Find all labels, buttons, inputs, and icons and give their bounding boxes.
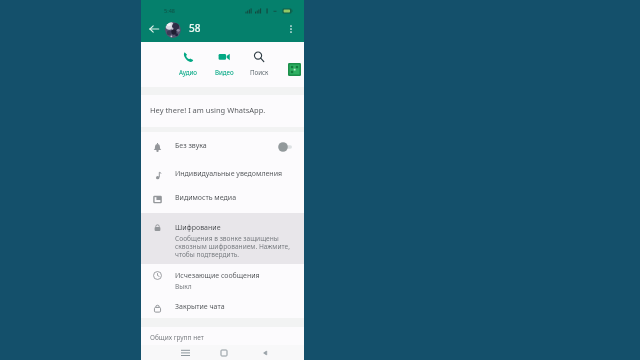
staticText: Видео bbox=[215, 68, 234, 76]
button[interactable]: QR code bbox=[288, 63, 301, 76]
staticText: Выкл bbox=[175, 282, 192, 291]
button[interactable]: Поиск bbox=[243, 46, 275, 82]
button[interactable]: Видимость медиа bbox=[141, 190, 304, 212]
staticText: 58 bbox=[189, 21, 201, 35]
staticText: Аудио bbox=[179, 68, 197, 76]
button[interactable] bbox=[165, 22, 181, 38]
staticText: Hey there! I am using WhatsApp. bbox=[150, 105, 266, 115]
staticText: Исчезающие сообщения bbox=[175, 271, 260, 281]
button[interactable]: More options bbox=[283, 21, 299, 37]
button[interactable]: Исчезающие сообщения bbox=[141, 268, 304, 298]
staticText: Шифрование bbox=[175, 223, 221, 233]
button[interactable]: Аудио bbox=[172, 46, 204, 82]
staticText: Видимость медиа bbox=[175, 193, 237, 203]
button[interactable]: Индивидуальные уведомления bbox=[141, 166, 304, 188]
staticText: Индивидуальные уведомления bbox=[175, 169, 283, 179]
staticText: Сообщения в звонке защищены сквозным шиф… bbox=[175, 234, 290, 259]
button[interactable]: Видео bbox=[208, 46, 240, 82]
staticText: Без звука bbox=[175, 141, 207, 151]
button[interactable]: Back bbox=[257, 345, 273, 360]
button[interactable]: Шифрование bbox=[141, 220, 304, 262]
button[interactable]: Закрытие чата bbox=[141, 299, 304, 321]
staticText: Закрытие чата bbox=[175, 302, 225, 312]
staticText: Общих групп нет bbox=[150, 333, 204, 342]
button[interactable]: Hey there! I am using WhatsApp. bbox=[141, 95, 304, 127]
button[interactable]: Back bbox=[146, 21, 162, 37]
button[interactable]: Home bbox=[216, 345, 232, 360]
button[interactable]: Recent apps bbox=[177, 345, 193, 360]
button[interactable]: Без звука bbox=[141, 138, 304, 160]
staticText: 5:48 bbox=[164, 7, 175, 14]
staticText: Поиск bbox=[250, 68, 269, 76]
